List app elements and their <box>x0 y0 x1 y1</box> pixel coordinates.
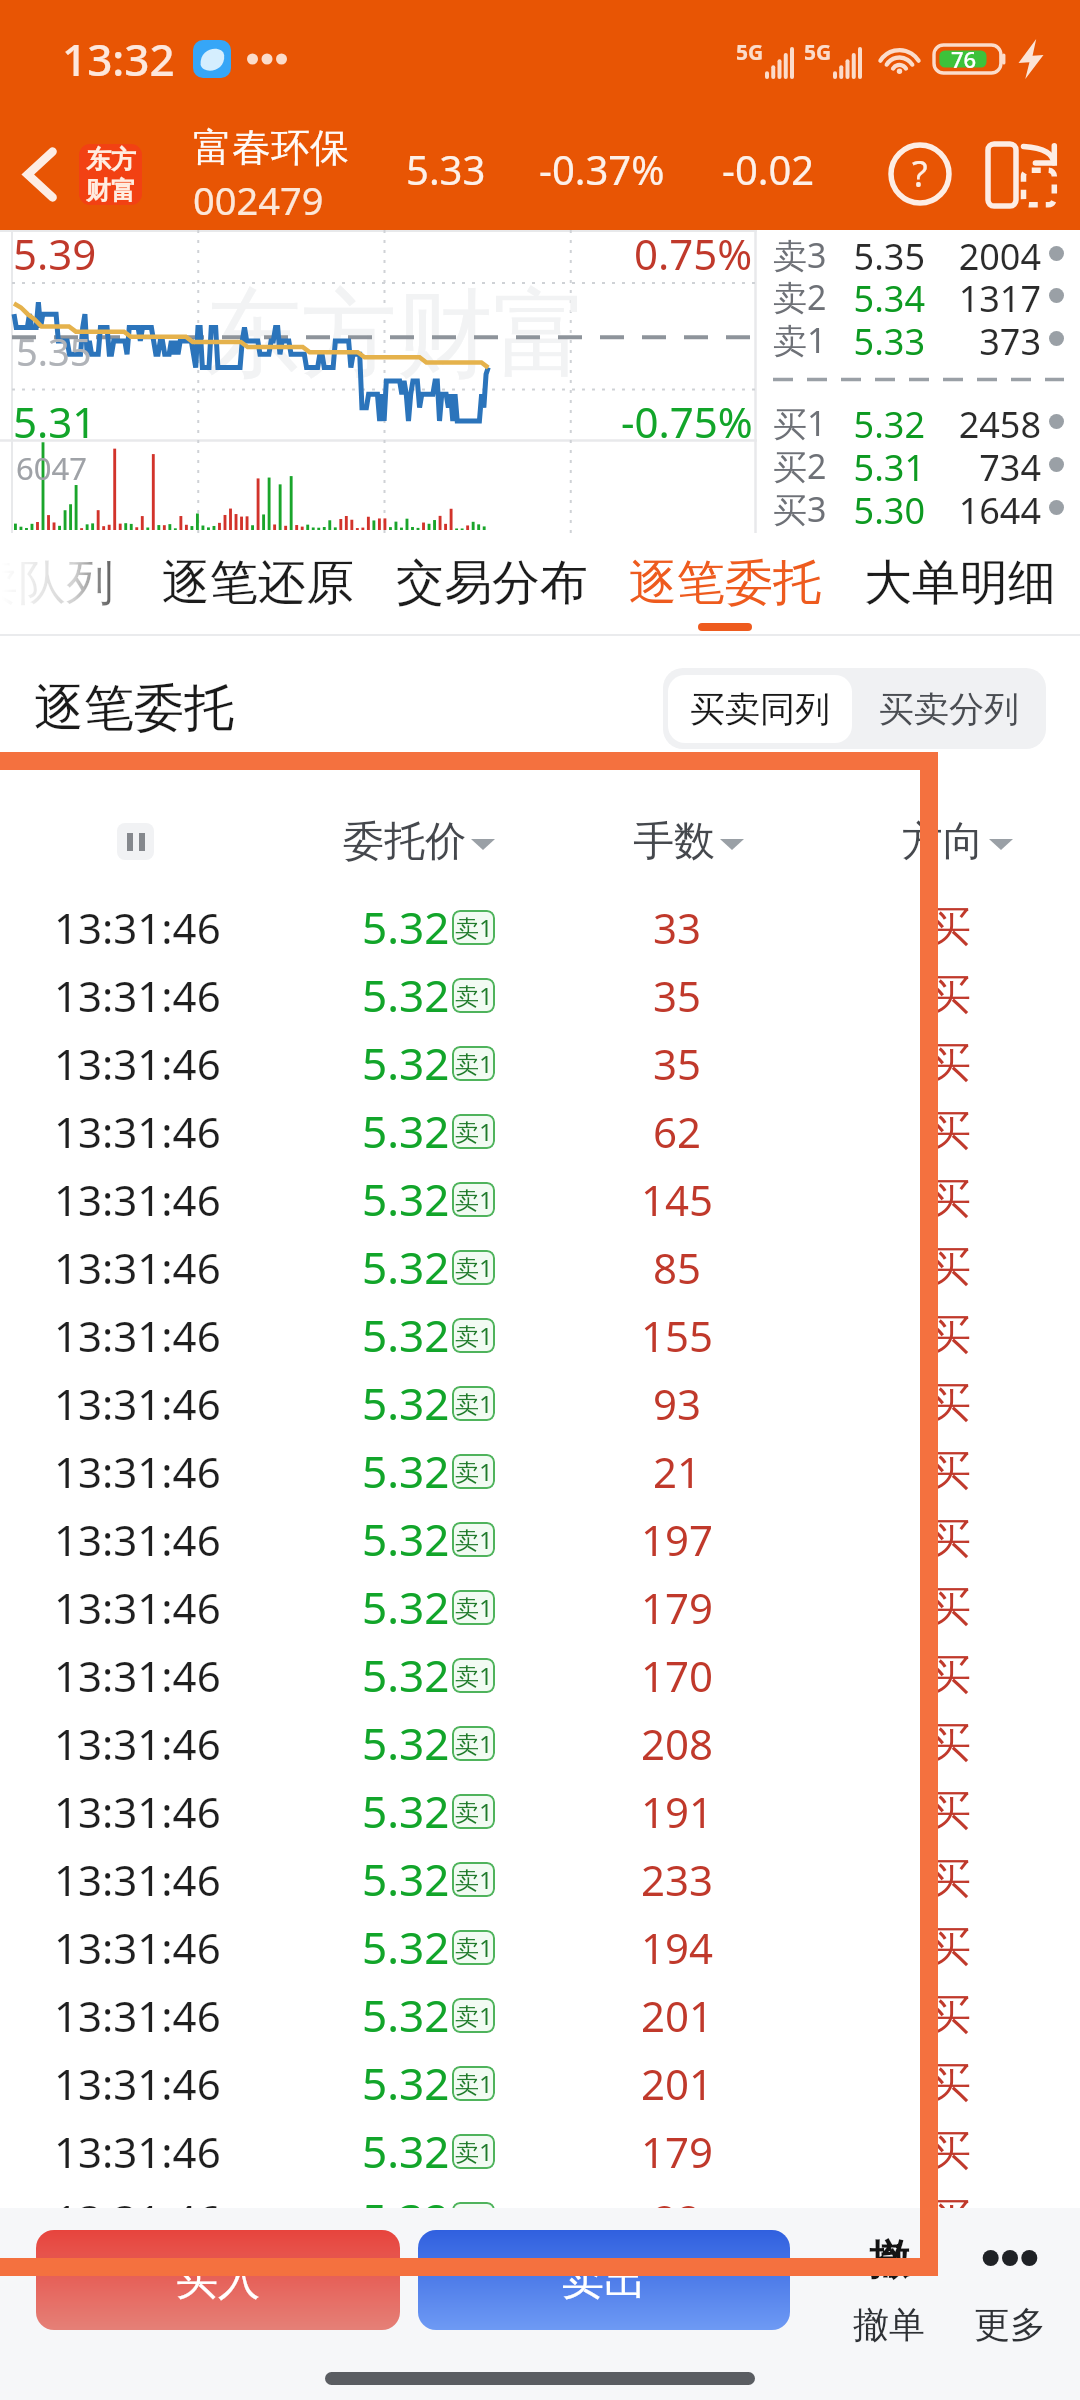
staticText: 5.32 <box>362 1033 450 1093</box>
staticText: 5.32 <box>362 2189 450 2249</box>
button[interactable]: 13:31:46 <box>0 1505 1080 1573</box>
button[interactable]: 13:31:46 <box>0 893 1080 961</box>
staticText: 93 <box>653 1375 702 1432</box>
button[interactable]: 13:31:46 <box>0 1369 1080 1437</box>
button[interactable]: 13:31:46 <box>0 1709 1080 1777</box>
button[interactable]: 13:31:46 <box>0 961 1080 1029</box>
staticText: 卖1 <box>455 1455 493 1488</box>
staticText: 买 <box>929 1377 971 1430</box>
button[interactable]: 逐笔委托 <box>605 533 845 636</box>
button[interactable]: Back <box>2 136 78 212</box>
button[interactable]: 买卖分列 <box>852 675 1046 743</box>
button[interactable]: 13:31:46 <box>0 1777 1080 1845</box>
staticText: 13:32 <box>62 29 175 89</box>
staticText: 买 <box>929 1581 971 1634</box>
staticText: 1317 <box>931 274 1041 317</box>
staticText: 1644 <box>931 486 1041 529</box>
staticText: -0.75% <box>621 393 753 450</box>
staticText: 13:31:46 <box>54 2055 221 2112</box>
staticText: 5.32 <box>362 1237 450 1297</box>
staticText: 13:31:46 <box>54 1715 221 1772</box>
staticText: 191 <box>641 1783 714 1840</box>
staticText: 76 <box>951 44 977 74</box>
button[interactable]: 买2 <box>773 443 1064 486</box>
button[interactable]: 13:31:46 <box>0 1029 1080 1097</box>
staticText: 5.32 <box>362 1645 450 1705</box>
button[interactable]: 逐笔还原 <box>138 533 378 636</box>
button[interactable]: 东方 <box>79 144 142 205</box>
button[interactable]: 卖出 <box>418 2230 790 2330</box>
button[interactable]: 买3 <box>773 486 1064 529</box>
button[interactable]: 手数 <box>568 790 808 893</box>
button[interactable]: 13:31:46 <box>0 1165 1080 1233</box>
button[interactable]: 13:31:46 <box>0 1913 1080 1981</box>
staticText: 卖出 <box>562 2254 646 2307</box>
button[interactable]: 13:31:46 <box>0 1573 1080 1641</box>
button[interactable]: 买入 <box>36 2230 400 2330</box>
button[interactable]: 卖1 <box>773 317 1064 360</box>
button[interactable]: 13:31:46 <box>0 2049 1080 2117</box>
staticText: 5.32 <box>362 965 450 1025</box>
staticText: 卖1 <box>455 1795 493 1828</box>
button[interactable]: 13:31:46 <box>0 1437 1080 1505</box>
staticText: 5.33 <box>406 142 486 196</box>
button[interactable]: 13:31:46 <box>0 2117 1080 2185</box>
button[interactable]: 买卖同列 <box>668 675 852 743</box>
button[interactable]: Rotate screen <box>983 141 1057 207</box>
button[interactable]: Pause <box>117 823 154 860</box>
staticText: 买 <box>929 1309 971 1362</box>
staticText: 13:31:46 <box>54 899 221 956</box>
staticText: 233 <box>641 1851 714 1908</box>
staticText: 买 <box>929 2057 971 2110</box>
staticText: 买卖分列 <box>879 687 1019 731</box>
staticText: 5.32 <box>362 897 450 957</box>
staticText: 5.32 <box>362 1373 450 1433</box>
button[interactable]: 大单明细 <box>840 533 1080 636</box>
staticText: 买 <box>929 1649 971 1702</box>
button[interactable]: Help <box>884 138 956 210</box>
staticText: 734 <box>931 443 1041 486</box>
button[interactable]: 13:31:46 <box>0 1641 1080 1709</box>
button[interactable]: 交易分布 <box>372 533 612 636</box>
button[interactable]: 13:31:46 <box>0 1233 1080 1301</box>
staticText: 13:31:46 <box>54 1239 221 1296</box>
staticText: 5.32 <box>362 1509 450 1569</box>
staticText: 买 <box>929 1037 971 1090</box>
button[interactable]: 13:31:46 <box>0 1845 1080 1913</box>
button[interactable]: 方向 <box>837 790 1077 893</box>
button[interactable]: 卖3 <box>773 232 1064 274</box>
button[interactable]: 撤 <box>806 2216 972 2356</box>
button[interactable]: 卖2 <box>773 274 1064 317</box>
staticText: 买1 <box>773 400 827 443</box>
staticText: 62 <box>653 1103 702 1160</box>
button[interactable]: 13:31:46 <box>0 1301 1080 1369</box>
staticText: 5.31 <box>827 443 925 486</box>
staticText: 0.75% <box>634 225 753 282</box>
staticText: 卖1 <box>455 1727 493 1760</box>
button[interactable]: 买卖队列 <box>0 533 138 636</box>
button[interactable]: 买1 <box>773 400 1064 443</box>
staticText: 13:31:46 <box>54 1579 221 1636</box>
staticText: 5.32 <box>827 400 925 443</box>
button[interactable]: 13:31:46 <box>0 1097 1080 1165</box>
staticText: 5.39 <box>13 225 97 282</box>
button[interactable]: 13:31:46 <box>0 1981 1080 2049</box>
staticText: 逐笔委托 <box>34 677 234 740</box>
staticText: 197 <box>641 1511 714 1568</box>
staticText: 145 <box>641 1171 714 1228</box>
staticText: 卖1 <box>773 317 827 360</box>
staticText: 5.32 <box>362 1781 450 1841</box>
staticText: 手数 <box>633 816 715 868</box>
staticText: 13:31:46 <box>54 1307 221 1364</box>
button[interactable]: 委托价 <box>299 790 539 893</box>
button[interactable]: More <box>940 2216 1080 2356</box>
staticText: 卖1 <box>455 1999 493 2032</box>
staticText: 撤单 <box>853 2302 925 2347</box>
staticText: 撤 <box>869 2234 909 2284</box>
staticText: 卖1 <box>455 1183 493 1216</box>
staticText: -0.02 <box>722 142 815 196</box>
staticText: 买 <box>929 1513 971 1566</box>
button[interactable]: 13:31:46 <box>0 2185 1080 2253</box>
staticText: 5.33 <box>827 317 925 360</box>
staticText: 买 <box>929 1785 971 1838</box>
